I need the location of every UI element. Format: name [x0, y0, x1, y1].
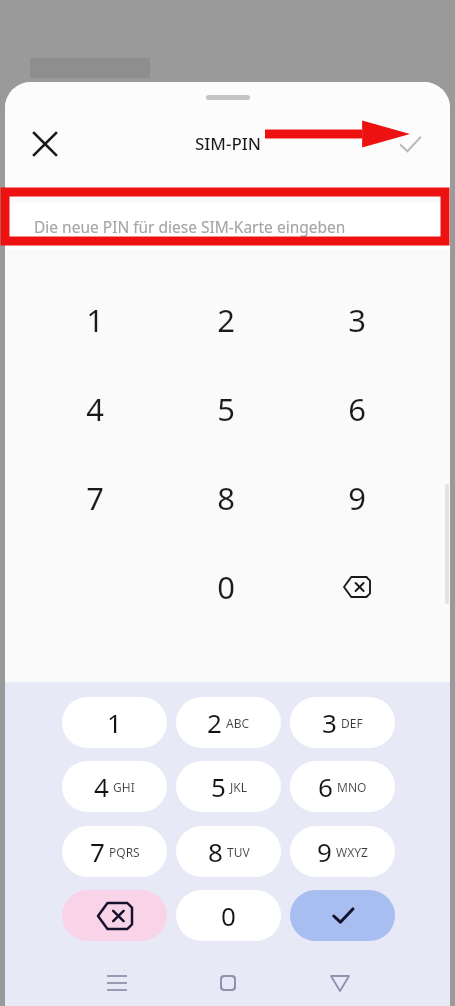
- staticText: 1: [86, 299, 104, 341]
- staticText: 4: [94, 769, 109, 804]
- staticText: SIM-PIN: [195, 132, 262, 155]
- staticText: 5: [217, 388, 235, 430]
- button[interactable]: 2: [176, 697, 281, 748]
- button[interactable]: 9: [327, 468, 387, 528]
- button[interactable]: 8: [176, 826, 281, 877]
- button[interactable]: Recent apps: [95, 961, 139, 1005]
- button[interactable]: Done: [290, 890, 395, 941]
- staticText: 7: [90, 834, 105, 869]
- button[interactable]: 3: [290, 697, 395, 748]
- staticText: 6: [348, 388, 366, 430]
- staticText: MNO: [337, 779, 367, 795]
- staticText: WXYZ: [336, 844, 368, 860]
- button[interactable]: 9: [290, 826, 395, 877]
- staticText: 3: [348, 299, 366, 341]
- staticText: 1: [107, 705, 122, 740]
- button[interactable]: 8: [196, 468, 256, 528]
- staticText: JKL: [230, 779, 247, 795]
- button[interactable]: 4: [65, 379, 125, 439]
- staticText: TUV: [227, 844, 250, 860]
- staticText: 2: [207, 705, 222, 740]
- button[interactable]: 1: [65, 290, 125, 350]
- staticText: 4: [86, 388, 104, 430]
- button[interactable]: Home: [206, 961, 250, 1005]
- button[interactable]: Delete: [62, 890, 167, 941]
- staticText: 7: [86, 477, 104, 519]
- staticText: 8: [217, 477, 235, 519]
- button[interactable]: Close: [19, 118, 71, 170]
- button[interactable]: 2: [196, 290, 256, 350]
- staticText: ABC: [226, 715, 250, 731]
- staticText: 9: [348, 477, 366, 519]
- button[interactable]: Back: [318, 961, 362, 1005]
- button[interactable]: 7: [62, 826, 167, 877]
- button[interactable]: 3: [327, 290, 387, 350]
- staticText: 9: [317, 834, 332, 869]
- staticText: PQRS: [109, 844, 140, 860]
- button[interactable]: 4: [62, 761, 167, 812]
- button[interactable]: Delete: [329, 559, 385, 615]
- button[interactable]: 1: [62, 697, 167, 748]
- staticText: 0: [221, 898, 236, 933]
- staticText: DEF: [341, 715, 363, 731]
- staticText: 6: [318, 769, 333, 804]
- button[interactable]: 5: [196, 379, 256, 439]
- button[interactable]: Confirm: [384, 118, 436, 170]
- staticText: 0: [217, 566, 235, 608]
- staticText: 5: [211, 769, 226, 804]
- button[interactable]: 0: [196, 557, 256, 617]
- staticText: Die neue PIN für diese SIM-Karte eingebe…: [34, 216, 346, 237]
- button[interactable]: 7: [65, 468, 125, 528]
- staticText: 3: [322, 705, 337, 740]
- button[interactable]: [5, 203, 450, 249]
- button[interactable]: 5: [176, 761, 281, 812]
- button[interactable]: 0: [176, 890, 281, 941]
- button[interactable]: 6: [327, 379, 387, 439]
- staticText: 2: [217, 299, 235, 341]
- button[interactable]: 6: [290, 761, 395, 812]
- staticText: 8: [208, 834, 223, 869]
- staticText: GHI: [113, 779, 135, 795]
